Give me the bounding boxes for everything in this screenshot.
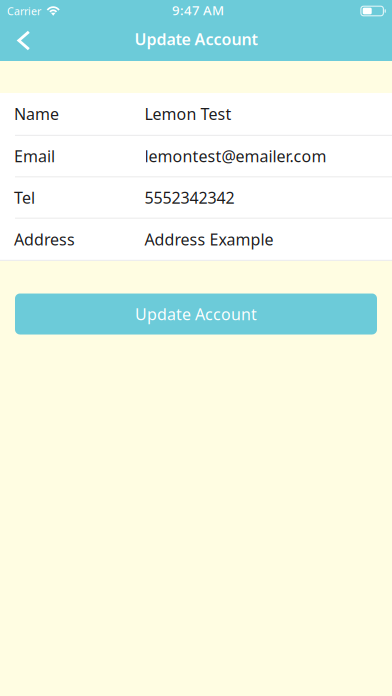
staticText: Update Account <box>134 28 257 50</box>
button[interactable]: Update Account <box>15 293 377 334</box>
staticText: Carrier <box>7 4 41 18</box>
staticText: Address <box>14 229 75 250</box>
button[interactable]: Back <box>0 22 46 61</box>
staticText: Tel <box>14 187 35 208</box>
staticText: 9:47 AM <box>172 1 224 19</box>
staticText: lemontest@emailer.com <box>144 145 326 167</box>
staticText: 5552342342 <box>144 187 234 208</box>
staticText: Update Account <box>135 303 257 325</box>
staticText: Name <box>14 103 59 124</box>
staticText: Email <box>14 145 55 167</box>
staticText: Lemon Test <box>144 103 231 124</box>
staticText: Address Example <box>144 229 273 250</box>
